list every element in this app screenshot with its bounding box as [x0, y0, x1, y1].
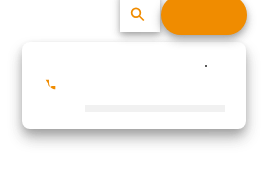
button[interactable]: Call — [161, 0, 247, 35]
button[interactable]: Search — [120, 0, 160, 32]
button[interactable] — [22, 42, 246, 129]
